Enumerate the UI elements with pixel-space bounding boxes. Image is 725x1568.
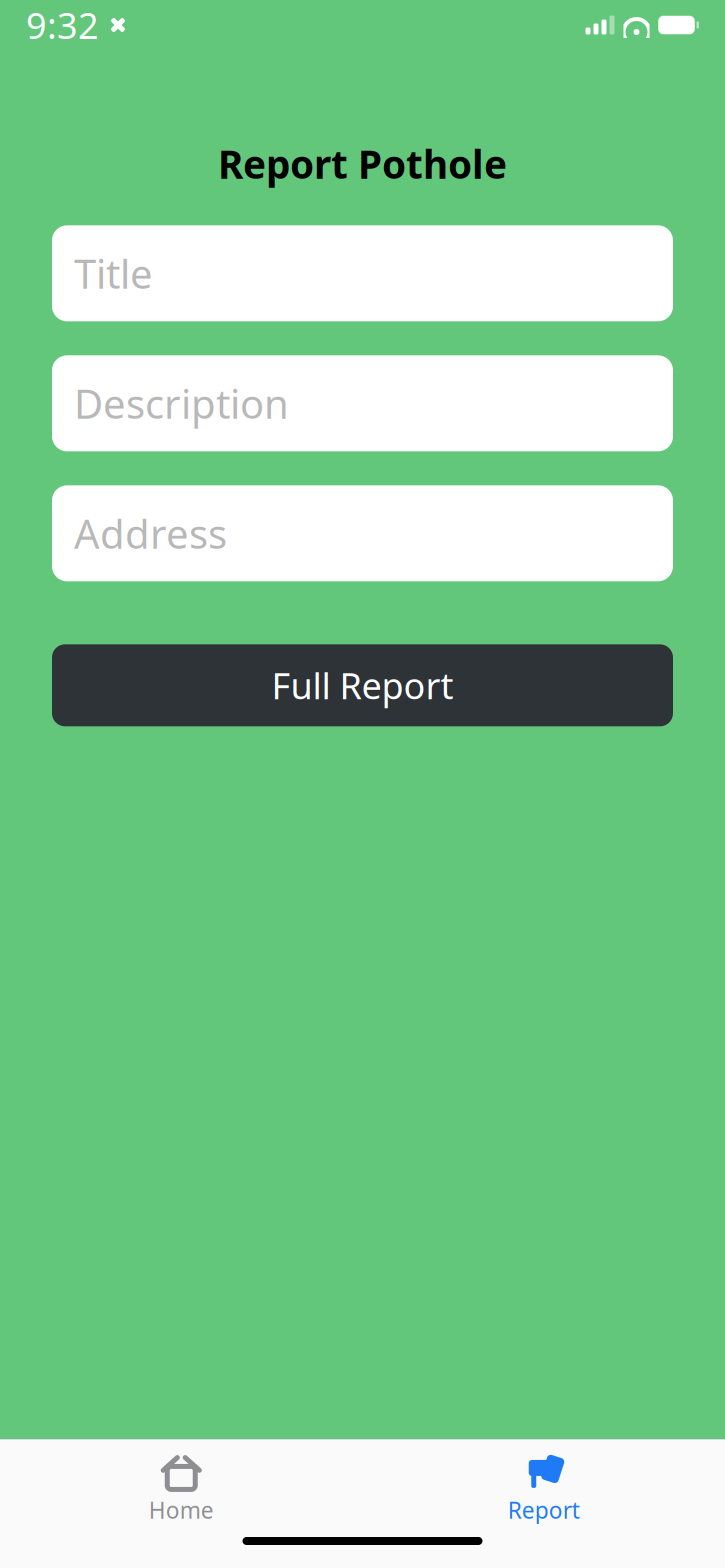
button[interactable]: Report bbox=[362, 1439, 725, 1525]
staticText: Address bbox=[74, 507, 227, 560]
button[interactable]: Description bbox=[52, 355, 673, 451]
staticText: Full Report bbox=[271, 661, 453, 709]
staticText: Title bbox=[74, 247, 153, 300]
button[interactable]: Address bbox=[52, 485, 673, 581]
staticText: Report Pothole bbox=[218, 138, 507, 189]
staticText: Description bbox=[74, 377, 289, 430]
staticText: 9:32 bbox=[26, 1, 99, 49]
button[interactable]: Full Report bbox=[52, 644, 673, 726]
button[interactable]: Title bbox=[52, 225, 673, 321]
button[interactable]: Home bbox=[0, 1439, 362, 1525]
staticText: Report bbox=[508, 1495, 580, 1525]
staticText: Home bbox=[149, 1495, 214, 1525]
